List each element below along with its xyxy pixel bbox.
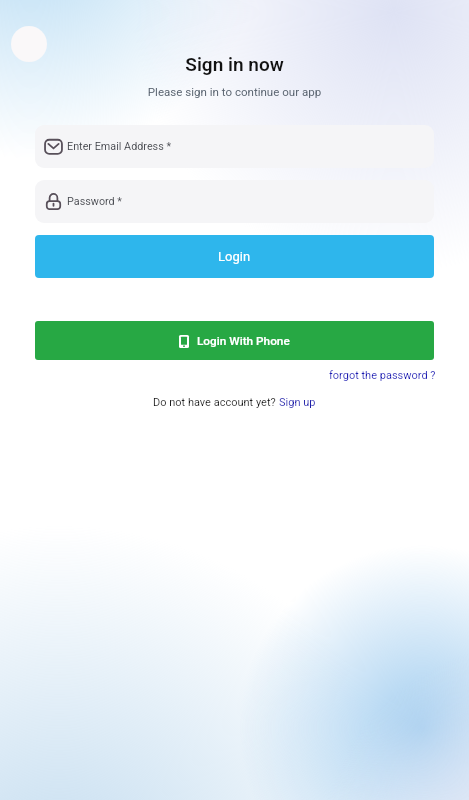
staticText: Enter Email Address * bbox=[67, 140, 172, 153]
staticText: Sign up bbox=[279, 396, 316, 409]
button[interactable]: Sign up bbox=[279, 396, 316, 409]
button[interactable]: Login bbox=[35, 235, 434, 278]
staticText: Password * bbox=[67, 195, 123, 208]
staticText: forgot the password ? bbox=[329, 369, 436, 382]
staticText: Sign in now bbox=[0, 53, 469, 75]
staticText: Please sign in to continue our app bbox=[0, 85, 469, 99]
button[interactable]: Enter Email Address * bbox=[35, 125, 434, 168]
button[interactable]: Login With Phone bbox=[35, 321, 434, 360]
button[interactable]: Password * bbox=[35, 180, 434, 223]
staticText: Login bbox=[218, 249, 251, 264]
staticText: Do not have account yet? bbox=[153, 396, 279, 409]
staticText: Login With Phone bbox=[197, 334, 290, 348]
button[interactable]: forgot the password ? bbox=[329, 369, 436, 382]
